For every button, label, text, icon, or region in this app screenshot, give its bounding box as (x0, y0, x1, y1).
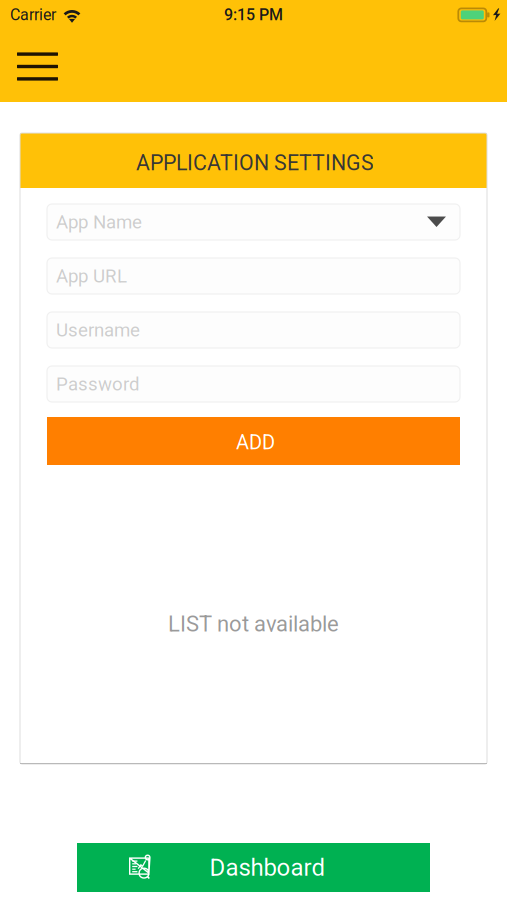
button[interactable]: Dashboard (77, 843, 430, 892)
staticText: Carrier (10, 5, 56, 24)
staticText: 9:15 PM (224, 5, 283, 24)
button[interactable]: ADD (47, 417, 460, 465)
staticText: App Name (56, 211, 142, 233)
button[interactable]: Username (47, 312, 460, 348)
staticText: APPLICATION SETTINGS (136, 150, 374, 175)
button[interactable]: App URL (47, 258, 460, 294)
staticText: Username (56, 319, 140, 341)
staticText: ADD (236, 431, 275, 454)
staticText: Dashboard (209, 853, 325, 881)
button[interactable]: Password (47, 366, 460, 402)
staticText: LIST not available (168, 611, 339, 637)
staticText: Password (56, 373, 140, 395)
staticText: App URL (56, 265, 127, 287)
button[interactable]: App Name (47, 204, 460, 240)
button[interactable]: Menu (0, 39, 78, 95)
